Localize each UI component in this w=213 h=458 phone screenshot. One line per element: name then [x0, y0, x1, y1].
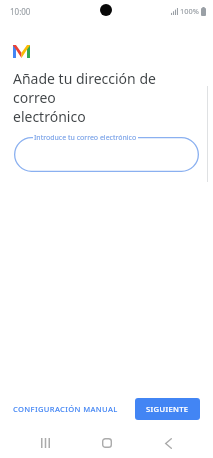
staticText: SIGUIENTE [146, 404, 189, 414]
staticText: Añade tu dirección de correo electrónico [13, 69, 199, 126]
staticText: 100% [180, 6, 199, 16]
staticText: CONFIGURACIÓN MANUAL [13, 404, 118, 414]
button[interactable]: SIGUIENTE [135, 398, 200, 420]
button[interactable]: Introduce tu correo electrónico [14, 137, 199, 172]
button[interactable]: CONFIGURACIÓN MANUAL [8, 400, 123, 418]
staticText: 10:00 [10, 6, 31, 17]
button[interactable]: Recents [28, 428, 62, 458]
staticText: Introduce tu correo electrónico [34, 133, 137, 143]
button[interactable]: Back [151, 428, 185, 458]
button[interactable]: Home [90, 428, 124, 458]
